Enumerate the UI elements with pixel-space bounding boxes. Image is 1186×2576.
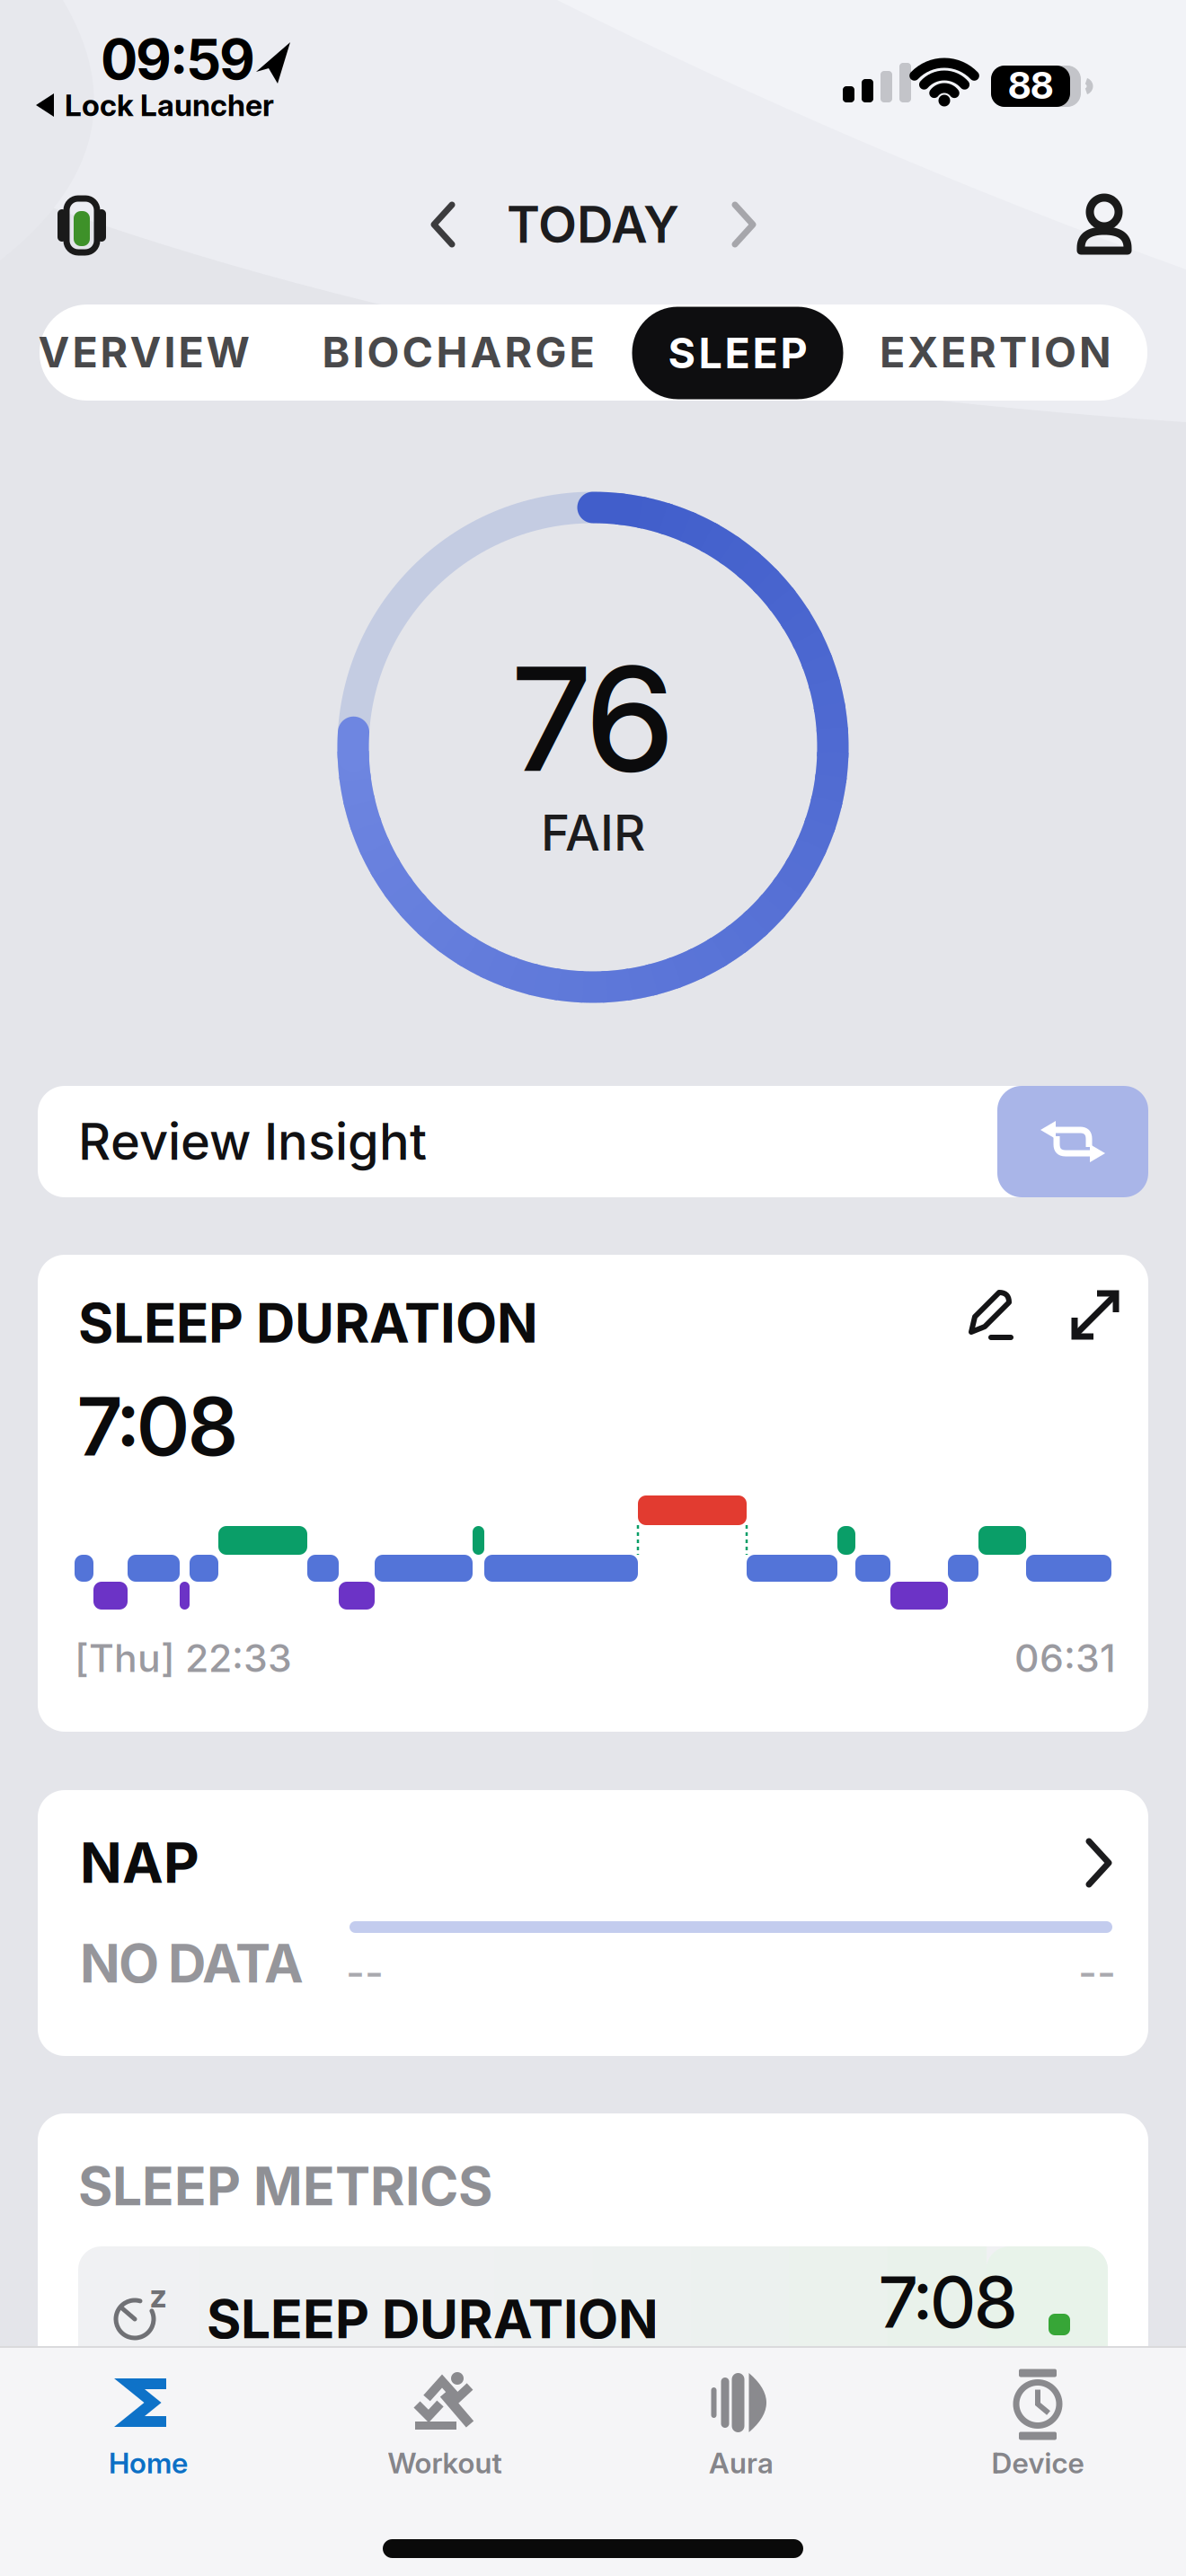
button[interactable]: Review Insight bbox=[38, 1086, 1148, 1197]
staticText: EXERTION bbox=[880, 327, 1111, 377]
button[interactable]: Expand sleep chart bbox=[1067, 1285, 1125, 1345]
staticText: SLEEP DURATION bbox=[78, 1291, 538, 1355]
staticText: NAP bbox=[80, 1830, 199, 1895]
button[interactable]: Device bbox=[912, 2347, 1164, 2500]
button[interactable]: Workout bbox=[319, 2347, 571, 2500]
staticText: FAIR bbox=[541, 804, 645, 862]
button[interactable]: BIOCHARGE bbox=[322, 327, 594, 377]
button[interactable]: NAP bbox=[38, 1790, 1148, 2056]
button[interactable]: SLEEP bbox=[632, 307, 843, 399]
staticText: -- bbox=[346, 1948, 384, 1996]
staticText: Lock Launcher bbox=[65, 87, 274, 123]
staticText: 06:31 bbox=[1014, 1635, 1116, 1681]
button[interactable]: VERVIEW bbox=[38, 327, 249, 377]
staticText: Home bbox=[109, 2446, 188, 2480]
staticText: 7:08 bbox=[880, 2259, 1017, 2345]
staticText: BIOCHARGE bbox=[322, 327, 594, 377]
staticText: 7:08 bbox=[78, 1378, 237, 1475]
button[interactable]: Aura bbox=[615, 2347, 867, 2500]
staticText: Review Insight bbox=[78, 1112, 427, 1171]
staticText: z bbox=[150, 2277, 167, 2315]
button[interactable]: Previous day bbox=[416, 189, 470, 260]
staticText: Device bbox=[991, 2446, 1084, 2480]
staticText: VERVIEW bbox=[38, 327, 249, 377]
staticText: NO DATA bbox=[80, 1932, 304, 1995]
staticText: Workout bbox=[388, 2446, 502, 2480]
button[interactable]: Profile bbox=[1073, 193, 1136, 256]
button[interactable]: z bbox=[78, 2246, 1108, 2576]
staticText: 76 bbox=[513, 632, 673, 805]
staticText: Aura bbox=[709, 2446, 774, 2480]
button[interactable]: Edit sleep bbox=[962, 1285, 1020, 1345]
staticText: TODAY bbox=[507, 195, 679, 254]
button[interactable]: Next day bbox=[717, 189, 771, 260]
button[interactable]: EXERTION bbox=[880, 327, 1111, 377]
staticText: 88 bbox=[1008, 63, 1053, 107]
button[interactable]: Refresh insight bbox=[997, 1086, 1148, 1197]
staticText: SLEEP DURATION bbox=[207, 2288, 659, 2350]
staticText: [Thu] 22:33 bbox=[75, 1635, 292, 1681]
staticText: -- bbox=[1078, 1948, 1116, 1996]
staticText: SLEEP bbox=[668, 328, 807, 378]
staticText: 09:59 bbox=[101, 27, 255, 92]
button[interactable]: Home bbox=[22, 2347, 274, 2500]
staticText: SLEEP METRICS bbox=[78, 2155, 492, 2217]
